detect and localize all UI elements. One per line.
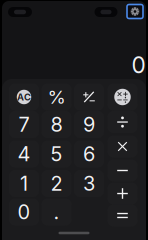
button[interactable]: 1 [9, 170, 39, 197]
staticText: . [53, 200, 59, 224]
button[interactable]: 6 [74, 140, 104, 167]
button[interactable]: 0 [9, 198, 39, 225]
button[interactable]: 4 [9, 140, 39, 167]
staticText: AC [17, 91, 31, 103]
button[interactable]: 9 [74, 111, 104, 138]
staticText: 3 [83, 171, 95, 196]
button[interactable]: 2 [41, 170, 71, 197]
staticText: 5 [50, 142, 62, 166]
staticText: 0 [131, 51, 145, 79]
button[interactable]: Operations [107, 83, 137, 110]
staticText: 0 [17, 200, 30, 224]
button[interactable]: All clear [9, 83, 39, 110]
staticText: 6 [83, 142, 95, 166]
button[interactable]: 8 [41, 111, 71, 138]
button[interactable]: Equals [107, 204, 137, 226]
button[interactable]: Settings [127, 4, 143, 18]
button[interactable]: Divide [107, 111, 137, 133]
staticText: % [47, 86, 65, 108]
button[interactable]: Plus minus [74, 83, 104, 110]
button[interactable]: Percent [41, 83, 71, 110]
staticText: 9 [83, 112, 95, 137]
staticText: 1 [20, 171, 28, 196]
button[interactable]: Multiply [107, 135, 137, 157]
button[interactable]: 3 [74, 170, 104, 197]
staticText: 4 [17, 142, 30, 166]
button[interactable]: Decimal point [41, 198, 71, 225]
button[interactable]: Subtract [107, 159, 137, 181]
staticText: 2 [50, 171, 62, 196]
staticText: 8 [50, 112, 62, 137]
button[interactable]: Add [107, 182, 137, 204]
button[interactable]: 7 [9, 111, 39, 138]
staticText: 7 [18, 112, 29, 137]
button[interactable]: 5 [41, 140, 71, 167]
